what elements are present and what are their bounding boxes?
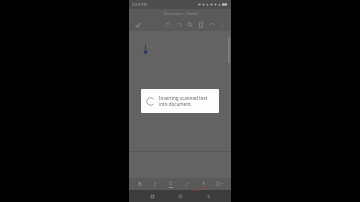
button[interactable]: Bold (135, 179, 145, 189)
button[interactable]: Home (175, 191, 185, 201)
button[interactable]: Redo (173, 19, 184, 30)
staticText: Inserting scanned text into document. (159, 95, 214, 107)
button[interactable]: Highlight (182, 179, 192, 189)
button[interactable]: Search (184, 19, 195, 30)
button[interactable]: Text color (198, 179, 208, 189)
staticText: U (169, 180, 173, 187)
button[interactable] (129, 31, 231, 178)
button[interactable]: Underline (166, 179, 176, 189)
staticText: B (138, 181, 142, 188)
button[interactable]: Italic (150, 179, 160, 189)
staticText: A (202, 180, 206, 187)
button[interactable]: Inserting scanned text into document. (141, 89, 219, 113)
button[interactable]: Share (206, 19, 217, 30)
button[interactable]: Print (195, 19, 206, 30)
button[interactable]: List options (213, 179, 225, 189)
staticText: I (154, 181, 156, 188)
button[interactable]: Back (203, 191, 213, 201)
button[interactable]: Done (132, 19, 143, 30)
staticText: 2:59 PM (132, 2, 148, 7)
staticText: Document - Saved (163, 11, 198, 16)
button[interactable]: Recents (147, 191, 157, 201)
button[interactable]: Undo (162, 19, 173, 30)
